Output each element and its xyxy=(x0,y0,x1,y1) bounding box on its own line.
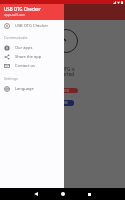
staticText: Share the app xyxy=(15,54,42,59)
staticText: Our apps xyxy=(15,45,33,50)
button[interactable]: Language xyxy=(0,84,64,93)
staticText: Settings xyxy=(4,76,18,81)
button[interactable]: Home xyxy=(49,188,76,200)
staticText: USB OTG Checker xyxy=(4,6,41,12)
button[interactable]: RE-CHECK xyxy=(47,88,78,93)
staticText: USB OTG Checker xyxy=(12,8,63,16)
staticText: Language xyxy=(15,86,34,91)
button[interactable]: Contact us xyxy=(0,61,64,70)
staticText: USB OTG is supported xyxy=(51,66,75,77)
button[interactable]: Share the app xyxy=(0,52,64,61)
staticText: MORE xyxy=(59,101,68,105)
staticText: apps.soft.com xyxy=(4,13,26,17)
button[interactable]: Back xyxy=(22,188,49,200)
button[interactable]: MORE xyxy=(52,100,74,106)
button[interactable]: USB OTG Checker xyxy=(0,21,64,30)
staticText: Contact us xyxy=(15,63,35,68)
button[interactable]: Our apps xyxy=(0,43,64,52)
staticText: USB OTG Checker xyxy=(15,23,49,28)
staticText: Communicate xyxy=(4,35,28,40)
button[interactable]: Recent apps xyxy=(76,188,103,200)
staticText: RE-CHECK xyxy=(55,89,70,93)
